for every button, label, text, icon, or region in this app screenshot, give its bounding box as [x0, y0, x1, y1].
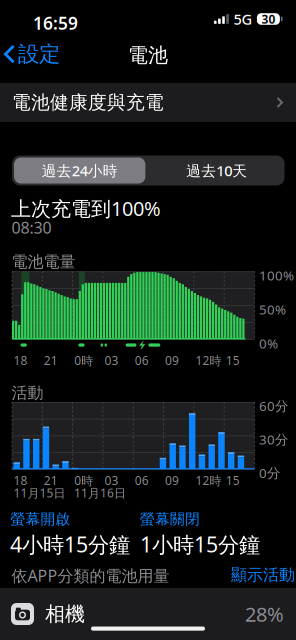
- staticText: 100%: [259, 266, 294, 284]
- staticText: 21: [44, 472, 58, 488]
- button[interactable]: 過去24小時: [14, 157, 145, 183]
- staticText: 60分: [259, 397, 288, 415]
- staticText: 設定: [18, 41, 60, 67]
- staticText: 21: [44, 352, 58, 368]
- staticText: 依APP分類的電池用量: [11, 565, 169, 586]
- staticText: 過去10天: [186, 161, 247, 180]
- staticText: 0分: [259, 464, 280, 482]
- staticText: 電池電量: [11, 252, 75, 272]
- button[interactable]: 相機: [0, 588, 296, 640]
- staticText: 0時: [74, 472, 93, 488]
- staticText: 12時: [195, 352, 221, 368]
- staticText: 09: [165, 472, 179, 488]
- staticText: 12時: [195, 472, 221, 488]
- button[interactable]: 電池健康度與充電: [0, 83, 296, 122]
- staticText: 上次充電到100%: [11, 195, 161, 222]
- staticText: 螢幕開啟: [10, 510, 70, 528]
- staticText: 18: [13, 352, 27, 368]
- staticText: 18: [13, 472, 27, 488]
- staticText: 50%: [259, 300, 286, 318]
- staticText: 電池: [128, 43, 168, 68]
- staticText: 4小時15分鐘: [10, 530, 130, 558]
- staticText: 電池健康度與充電: [12, 91, 164, 114]
- staticText: 顯示活動: [231, 565, 295, 585]
- staticText: 03: [104, 472, 118, 488]
- button[interactable]: 顯示活動: [228, 562, 296, 588]
- button[interactable]: 設定: [0, 37, 66, 71]
- staticText: 06: [135, 472, 149, 488]
- staticText: 0%: [259, 334, 278, 352]
- staticText: 30: [261, 11, 275, 27]
- staticText: 08:30: [11, 217, 51, 238]
- staticText: 28%: [245, 601, 284, 627]
- staticText: 5G: [233, 9, 252, 29]
- staticText: 15: [226, 352, 240, 368]
- staticText: 11月15日: [13, 485, 65, 501]
- staticText: 活動: [11, 383, 43, 403]
- staticText: 相機: [45, 602, 85, 626]
- staticText: 30分: [259, 430, 288, 448]
- staticText: 09: [165, 352, 179, 368]
- staticText: 16:59: [33, 11, 78, 34]
- staticText: 11月16日: [74, 485, 126, 501]
- staticText: 1小時15分鐘: [140, 530, 260, 558]
- staticText: 螢幕關閉: [140, 510, 200, 528]
- staticText: 過去24小時: [42, 161, 118, 180]
- staticText: 03: [104, 352, 118, 368]
- button[interactable]: 過去10天: [151, 157, 282, 183]
- staticText: 15: [226, 472, 240, 488]
- staticText: 0時: [74, 352, 93, 368]
- staticText: 06: [135, 352, 149, 368]
